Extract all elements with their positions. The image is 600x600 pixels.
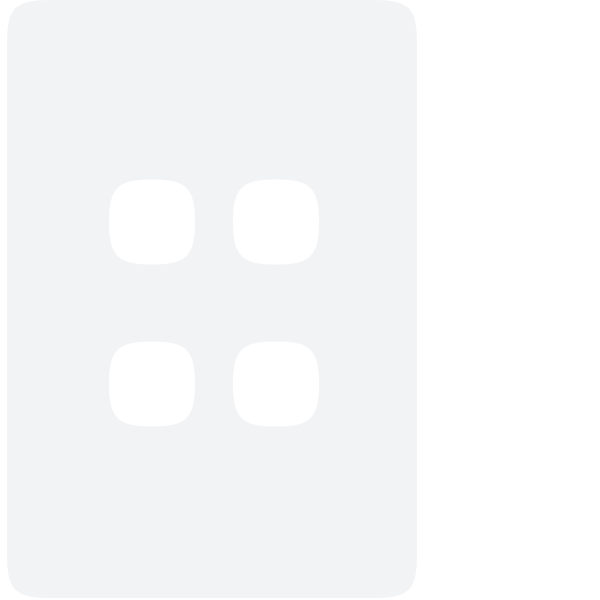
button[interactable]: App 2 <box>233 179 319 264</box>
button[interactable]: App 4 <box>233 341 319 426</box>
button[interactable]: App 1 <box>109 179 195 264</box>
button[interactable]: App 3 <box>109 341 195 426</box>
